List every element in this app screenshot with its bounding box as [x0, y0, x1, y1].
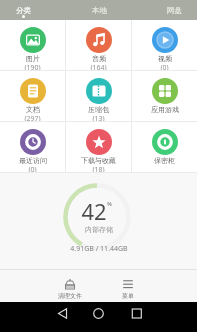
staticText: 压缩包 [88, 105, 109, 114]
button[interactable]: 文档 [0, 71, 65, 121]
staticText: 分类 [16, 6, 31, 15]
button[interactable]: 音频 [66, 20, 131, 70]
button[interactable]: 网盘 [167, 6, 182, 15]
button[interactable]: 压缩包 [66, 71, 131, 121]
staticText: 文档 [26, 105, 40, 114]
staticText: (164) [90, 63, 107, 70]
staticText: 最近访问 [19, 156, 47, 165]
button[interactable] [131, 302, 197, 332]
button[interactable]: 视频 [132, 20, 197, 70]
staticText: (297) [24, 114, 41, 121]
staticText: (0) [28, 165, 37, 172]
staticText: (18) [92, 165, 105, 172]
staticText: (13) [92, 114, 105, 121]
button[interactable]: 分类 [16, 6, 31, 15]
staticText: (0) [160, 63, 169, 70]
staticText: % [107, 200, 112, 207]
button[interactable] [0, 302, 65, 332]
button[interactable]: 最近访问 [0, 122, 65, 172]
staticText: 清理文件 [58, 292, 82, 300]
staticText: 下载与收藏 [81, 156, 116, 165]
staticText: 42 [81, 196, 107, 226]
button[interactable] [65, 302, 131, 332]
staticText: (190) [24, 63, 41, 70]
staticText: 音频 [92, 54, 106, 63]
staticText: 4.91GB / 11.44GB [70, 244, 128, 254]
button[interactable]: 清理文件 [41, 270, 99, 302]
staticText: 视频 [158, 54, 172, 63]
button[interactable]: 下载与收藏 [66, 122, 131, 172]
button[interactable]: 图片 [0, 20, 65, 70]
button[interactable]: 菜单 [99, 270, 157, 302]
staticText: 保密柜 [154, 156, 175, 165]
button[interactable]: 保密柜 [132, 122, 197, 172]
staticText: 图片 [26, 54, 40, 63]
staticText: 本地 [92, 6, 107, 15]
button[interactable]: 本地 [92, 6, 107, 15]
button[interactable]: 应用游戏 [132, 71, 197, 121]
staticText: 网盘 [167, 6, 182, 15]
staticText: 应用游戏 [151, 105, 179, 114]
staticText: 内部存储 [85, 225, 113, 234]
staticText: 菜单 [122, 292, 134, 300]
